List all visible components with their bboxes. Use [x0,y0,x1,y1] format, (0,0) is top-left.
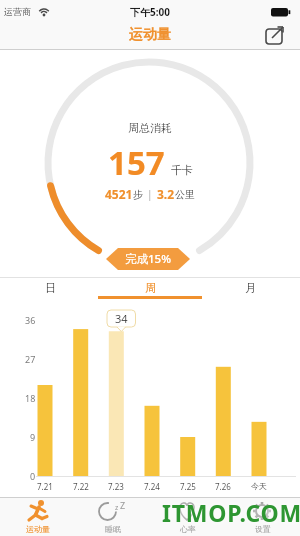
staticText: 7.22 [73,481,89,492]
button[interactable]: 周 [100,279,200,297]
staticText: 睡眠 [105,524,121,534]
staticText: 4521 [105,186,133,202]
staticText: 9 [30,431,36,443]
staticText: 心率 [180,524,196,534]
staticText: | [147,187,153,201]
staticText: 7.23 [108,481,124,492]
staticText: 18 [25,392,36,404]
staticText: 运营商 [4,6,31,17]
staticText: 7.21 [37,481,53,492]
staticText: 7.24 [144,481,160,492]
staticText: 0 [30,470,36,482]
staticText: 设置 [255,524,271,534]
button[interactable]: 月 [200,279,300,297]
staticText: 7.25 [180,481,196,492]
button[interactable]: 完成15% [106,248,190,270]
staticText: ITMOP.COM [162,497,300,528]
staticText: 运动量 [129,26,171,44]
staticText: 今天 [251,481,267,491]
staticText: 千卡 [171,163,193,177]
staticText: 7.26 [215,481,231,492]
staticText: z [115,503,119,513]
button[interactable]: 运动量 [0,497,75,536]
staticText: 周 [145,281,156,295]
button[interactable]: 日 [0,279,100,297]
staticText: 下午5:00 [130,5,170,19]
button[interactable] [261,24,289,48]
staticText: Z [120,499,126,511]
button[interactable]: 心率 [150,497,225,536]
staticText: 日 [45,281,56,295]
staticText: 步 [133,188,143,201]
staticText: 完成15% [125,251,171,267]
button[interactable]: 睡眠 [75,497,150,536]
staticText: 27 [25,353,36,365]
staticText: 34 [115,311,128,326]
staticText: 157 [108,140,165,185]
staticText: 周总消耗 [128,121,172,135]
staticText: 公里 [175,188,195,201]
staticText: 3.2 [157,186,175,202]
staticText: 月 [245,281,256,295]
staticText: 运动量 [26,524,50,534]
button[interactable]: 设置 [225,497,300,536]
staticText: 36 [25,314,36,326]
